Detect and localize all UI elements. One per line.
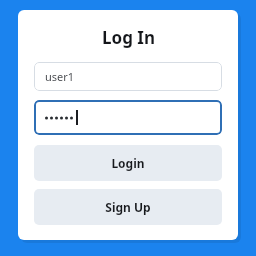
button[interactable]: Password field	[34, 100, 222, 135]
staticText: user1	[45, 69, 75, 84]
button[interactable]: Sign Up	[34, 189, 222, 225]
staticText: Login	[111, 155, 145, 171]
button[interactable]: Login	[34, 145, 222, 181]
staticText: Sign Up	[105, 199, 151, 215]
staticText: Log In	[102, 26, 155, 49]
button[interactable]: user1	[34, 62, 222, 91]
